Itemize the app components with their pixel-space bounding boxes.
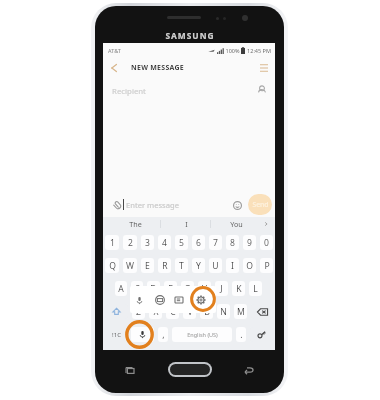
staticText: S <box>135 283 140 295</box>
button[interactable]: Keyboard settings <box>192 291 210 309</box>
staticText: 3 <box>145 237 150 249</box>
staticText: U <box>212 260 219 272</box>
button[interactable]: Voice input <box>130 291 148 309</box>
staticText: . <box>240 329 243 341</box>
button[interactable]: Symbols <box>105 327 127 342</box>
button[interactable]: B <box>200 304 213 319</box>
button[interactable]: Stickers <box>151 291 169 309</box>
staticText: D <box>150 283 157 295</box>
button[interactable]: Q <box>105 258 119 273</box>
staticText: 0 <box>264 237 269 249</box>
button[interactable]: T <box>175 258 188 273</box>
button[interactable]: G <box>181 281 194 296</box>
staticText: I <box>231 260 234 272</box>
staticText: E <box>145 260 150 272</box>
button[interactable]: 2 <box>123 235 137 250</box>
button[interactable]: I <box>161 217 211 231</box>
button[interactable]: Clipboard <box>170 291 188 309</box>
button[interactable]: Backspace <box>251 304 273 319</box>
button[interactable]: 5 <box>175 235 188 250</box>
staticText: 9 <box>247 237 252 249</box>
button[interactable]: , <box>158 327 168 342</box>
button[interactable]: The <box>110 217 161 231</box>
button[interactable]: M <box>234 304 247 319</box>
button[interactable]: 0 <box>260 235 273 250</box>
button[interactable]: A <box>115 281 127 296</box>
button[interactable]: 8 <box>226 235 239 250</box>
button[interactable]: Add recipient from contacts <box>255 83 269 97</box>
button[interactable]: X <box>149 304 162 319</box>
staticText: , <box>162 329 165 341</box>
button[interactable]: Emoji <box>230 198 244 212</box>
button[interactable]: 4 <box>158 235 171 250</box>
staticText: NEW MESSAGE <box>131 63 184 73</box>
staticText: You <box>230 219 243 229</box>
button[interactable]: W <box>123 258 137 273</box>
button[interactable]: More options <box>253 57 275 78</box>
staticText: The <box>129 219 142 229</box>
button[interactable]: J <box>215 281 228 296</box>
button[interactable]: Send <box>248 194 272 215</box>
button[interactable]: Z <box>132 304 145 319</box>
staticText: M <box>237 306 245 318</box>
button[interactable]: C <box>166 304 179 319</box>
staticText: SAMSUNG <box>165 30 215 41</box>
staticText: H <box>201 283 208 295</box>
button[interactable]: N <box>217 304 230 319</box>
button[interactable]: . <box>236 327 246 342</box>
staticText: C <box>170 306 176 318</box>
staticText: Enter message <box>126 200 179 210</box>
staticText: English (US) <box>187 331 218 338</box>
button[interactable]: 3 <box>141 235 154 250</box>
button[interactable]: 6 <box>192 235 205 250</box>
staticText: T <box>179 260 184 272</box>
button[interactable]: I <box>226 258 239 273</box>
button[interactable]: O <box>243 258 256 273</box>
staticText: 2 <box>128 237 133 249</box>
button[interactable]: 7 <box>209 235 222 250</box>
button[interactable]: 1 <box>105 235 119 250</box>
button[interactable]: P <box>260 258 273 273</box>
button[interactable]: Attach <box>110 198 124 212</box>
button[interactable]: R <box>158 258 171 273</box>
button[interactable]: L <box>249 281 262 296</box>
button[interactable]: F <box>164 281 177 296</box>
button[interactable]: D <box>147 281 160 296</box>
staticText: F <box>168 283 173 295</box>
staticText: Q <box>109 260 116 272</box>
staticText: B <box>204 306 210 318</box>
staticText: Y <box>196 260 201 272</box>
button[interactable]: K <box>232 281 245 296</box>
staticText: 4 <box>162 237 167 249</box>
button[interactable]: U <box>209 258 222 273</box>
staticText: R <box>162 260 168 272</box>
button[interactable]: Back <box>103 57 125 78</box>
staticText: X <box>153 306 159 318</box>
button[interactable]: H <box>198 281 211 296</box>
button[interactable]: Y <box>192 258 205 273</box>
staticText: J <box>220 283 223 295</box>
staticText: K <box>236 283 242 295</box>
button[interactable]: You <box>211 217 261 231</box>
staticText: !1C <box>112 331 121 339</box>
staticText: L <box>253 283 258 295</box>
button[interactable]: Back <box>241 362 257 378</box>
staticText: 12:45 PM <box>247 47 271 54</box>
button[interactable]: Shift <box>105 304 128 319</box>
button[interactable]: 9 <box>243 235 256 250</box>
staticText: 6 <box>196 237 201 249</box>
button[interactable]: Recents <box>122 362 138 378</box>
staticText: 5 <box>179 237 184 249</box>
button[interactable]: V <box>183 304 196 319</box>
staticText: Z <box>136 306 141 318</box>
button[interactable]: English (US) <box>172 327 232 342</box>
staticText: 1 <box>110 237 115 249</box>
staticText: A <box>118 283 124 295</box>
staticText: Recipient <box>112 86 146 97</box>
staticText: 7 <box>213 237 218 249</box>
button[interactable]: Voice input <box>131 327 154 342</box>
button[interactable]: E <box>141 258 154 273</box>
button[interactable]: Emoji <box>250 327 273 342</box>
button[interactable]: S <box>131 281 143 296</box>
staticText: G <box>184 283 191 295</box>
